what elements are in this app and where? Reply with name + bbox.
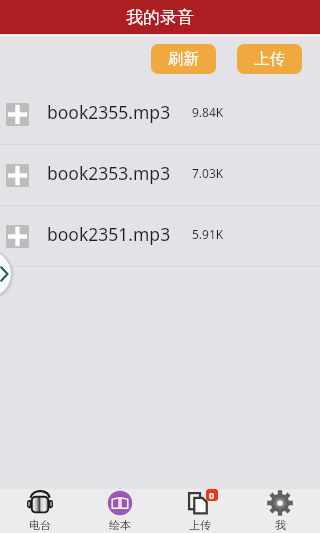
- button[interactable]: book2355.mp3: [0, 84, 320, 144]
- staticText: 上传: [189, 518, 211, 532]
- button[interactable]: 0: [160, 489, 240, 533]
- staticText: 0: [209, 489, 215, 501]
- button[interactable]: book2353.mp3: [0, 145, 320, 205]
- button[interactable]: 绘本: [80, 489, 160, 533]
- staticText: 绘本: [109, 518, 131, 532]
- staticText: 5.91K: [192, 226, 224, 242]
- button[interactable]: book2351.mp3: [0, 206, 320, 266]
- staticText: 我的录音: [126, 7, 194, 28]
- staticText: 刷新: [168, 49, 199, 69]
- button[interactable]: 我: [240, 489, 320, 533]
- staticText: book2351.mp3: [47, 222, 171, 246]
- staticText: 7.03K: [192, 165, 224, 181]
- staticText: 我: [275, 518, 286, 532]
- staticText: book2353.mp3: [47, 161, 171, 185]
- button[interactable]: 电台: [0, 489, 80, 533]
- staticText: 9.84K: [192, 104, 224, 120]
- staticText: 电台: [29, 518, 51, 532]
- staticText: book2355.mp3: [47, 100, 171, 124]
- button[interactable]: 刷新: [151, 44, 216, 74]
- button[interactable]: Open drawer: [0, 249, 13, 299]
- button[interactable]: 上传: [237, 44, 302, 74]
- staticText: 上传: [254, 49, 285, 69]
